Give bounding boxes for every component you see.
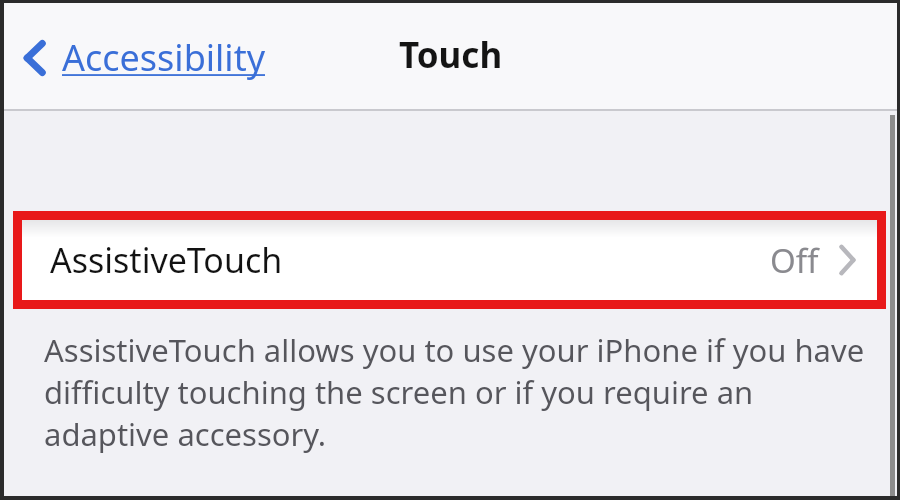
button[interactable]: AssistiveTouch <box>22 220 877 300</box>
staticText: difficulty touching the screen or if you… <box>44 371 754 413</box>
staticText: Accessibility <box>62 33 266 82</box>
other: Open AssistiveTouch <box>839 245 855 275</box>
staticText: adaptive accessory. <box>44 413 327 455</box>
button[interactable]: Accessibility <box>18 27 270 88</box>
staticText: Touch <box>399 31 503 79</box>
staticText: AssistiveTouch allows you to use your iP… <box>44 329 865 371</box>
staticText: Off <box>770 238 819 283</box>
staticText: AssistiveTouch <box>50 237 283 283</box>
